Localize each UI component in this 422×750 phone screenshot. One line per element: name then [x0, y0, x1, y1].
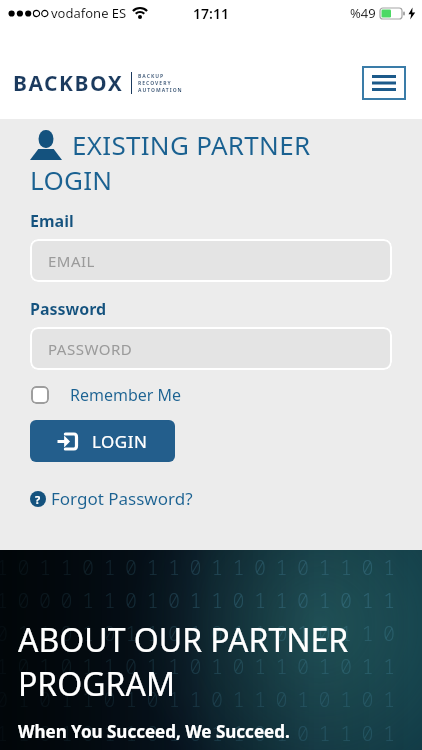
staticText: 1101011010110101101	[0, 720, 405, 747]
staticText: When You Succeed, We Succeed.	[18, 720, 290, 743]
button[interactable]: EMAIL	[30, 239, 392, 282]
staticText: Password	[30, 298, 107, 320]
staticText: 0110101101011010110	[0, 620, 405, 647]
staticText: ABOUT OUR PARTNER	[18, 618, 349, 662]
staticText: BACKBOX	[13, 69, 124, 98]
staticText: PROGRAM	[18, 662, 175, 706]
staticText: LOGIN	[30, 162, 113, 197]
staticText: %49	[350, 4, 376, 22]
staticText: 1010110110101101011	[0, 653, 405, 680]
staticText: 1000110101101101011	[0, 587, 405, 614]
staticText: 0101101011011010101	[0, 686, 405, 713]
staticText: Forgot Password?	[51, 487, 193, 510]
staticText: 1011010110110101101	[0, 554, 405, 581]
staticText: EMAIL	[48, 251, 95, 271]
staticText: RECOVERY	[138, 80, 172, 87]
staticText: Email	[30, 210, 74, 232]
staticText: Remember Me	[70, 384, 182, 406]
button[interactable]: LOGIN	[30, 420, 175, 462]
button[interactable]: PASSWORD	[30, 327, 392, 370]
staticText: 17:11	[193, 4, 229, 23]
button[interactable]: Remember Me	[30, 384, 182, 406]
staticText: ?	[35, 492, 41, 507]
button[interactable]	[362, 66, 406, 100]
staticText: PASSWORD	[48, 339, 133, 359]
staticText: AUTOMATION	[138, 87, 183, 94]
staticText: EXISTING PARTNER	[72, 127, 311, 162]
staticText: vodafone ES	[51, 4, 127, 22]
button[interactable]: ?	[30, 487, 193, 510]
staticText: LOGIN	[92, 430, 148, 453]
staticText: BACKUP	[138, 73, 165, 80]
